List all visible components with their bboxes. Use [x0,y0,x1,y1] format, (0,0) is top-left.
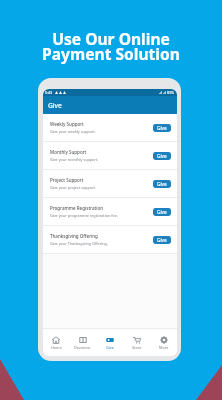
button[interactable]: Home [43,329,69,356]
other: More [160,336,168,344]
button[interactable]: Monthly Support [43,142,177,170]
button[interactable]: Give [153,236,171,244]
button[interactable]: Store [123,329,150,356]
button[interactable]: Give [43,96,177,114]
staticText: Give your weekly support. [50,129,96,134]
other: Home [52,336,60,344]
button[interactable]: More [150,329,177,356]
staticText: More [159,345,169,350]
staticText: Give your Thanksgiving Offering. [50,241,108,246]
button[interactable]: Programme Registration [43,198,177,226]
staticText: Thanksgiving Offering [50,233,98,239]
staticText: Give your project support. [50,185,96,190]
button[interactable]: Give [96,329,123,356]
staticText: Weekly Support [50,121,84,127]
button[interactable]: Give [153,180,171,188]
staticText: Give [157,153,167,159]
button[interactable]: Give [153,152,171,160]
button[interactable]: Give [153,208,171,216]
staticText: Give [157,209,167,215]
button[interactable]: Weekly Support [43,114,177,142]
staticText: Devotion [74,345,91,350]
staticText: Give your programme registration fee. [50,213,118,218]
staticText: Monthly Support [50,149,87,155]
staticText: 5:43 [45,90,53,95]
staticText: Project Support [50,177,84,183]
button[interactable]: Thanksgiving Offering [43,226,177,254]
other: Devotion [79,336,87,344]
staticText: Give [157,181,167,187]
staticText: 83% [167,90,175,95]
staticText: Give [157,237,167,243]
other: Store [133,336,141,344]
staticText: Give [106,345,114,350]
staticText: Give your monthly support. [50,157,99,162]
staticText: Programme Registration [50,205,103,211]
button[interactable]: Devotion [69,329,96,356]
staticText: Store [132,345,142,350]
button[interactable]: Project Support [43,170,177,198]
other: Give [106,336,114,344]
button[interactable]: Give [153,124,171,132]
staticText: Home [51,345,62,350]
staticText: Give [157,125,167,131]
staticText: Give [48,101,62,110]
staticText: Use Our Online Payment Solution [0,28,222,64]
